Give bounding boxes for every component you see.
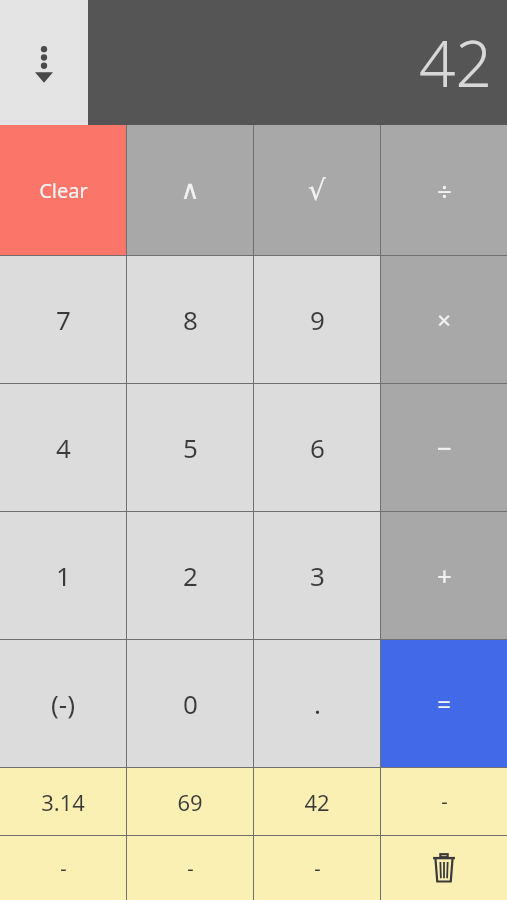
- button[interactable]: -: [381, 768, 507, 835]
- button[interactable]: Clear: [0, 125, 126, 255]
- staticText: 42: [419, 19, 493, 106]
- button[interactable]: More options: [0, 0, 88, 125]
- staticText: 1: [56, 558, 71, 593]
- staticText: -: [441, 788, 448, 815]
- staticText: Clear: [39, 177, 88, 204]
- staticText: ∧: [180, 175, 200, 205]
- button[interactable]: 2: [127, 512, 253, 639]
- button[interactable]: 5: [127, 384, 253, 511]
- staticText: (-): [51, 686, 75, 721]
- button[interactable]: Power: [127, 125, 253, 255]
- staticText: 8: [183, 302, 198, 337]
- staticText: −: [437, 430, 452, 465]
- staticText: 7: [56, 302, 71, 337]
- staticText: 69: [177, 787, 203, 817]
- staticText: +: [437, 558, 452, 593]
- button[interactable]: 1: [0, 512, 126, 639]
- button[interactable]: Multiply: [381, 256, 507, 383]
- button[interactable]: 8: [127, 256, 253, 383]
- button[interactable]: Clear memory: [381, 836, 507, 900]
- staticText: 2: [183, 558, 198, 593]
- button[interactable]: 69: [127, 768, 253, 835]
- staticText: 6: [310, 430, 325, 465]
- staticText: .: [314, 686, 321, 721]
- button[interactable]: 3.14: [0, 768, 126, 835]
- staticText: 0: [183, 686, 198, 721]
- button[interactable]: 9: [254, 256, 380, 383]
- staticText: 5: [183, 430, 198, 465]
- staticText: ÷: [437, 173, 452, 208]
- button[interactable]: 42: [254, 768, 380, 835]
- button[interactable]: .: [254, 640, 380, 767]
- button[interactable]: -: [0, 836, 126, 900]
- button[interactable]: 6: [254, 384, 380, 511]
- button[interactable]: 0: [127, 640, 253, 767]
- button[interactable]: -: [254, 836, 380, 900]
- staticText: √: [308, 174, 326, 207]
- button[interactable]: 3: [254, 512, 380, 639]
- button[interactable]: Equals: [381, 640, 507, 767]
- staticText: -: [314, 855, 321, 882]
- button[interactable]: 7: [0, 256, 126, 383]
- staticText: ×: [437, 303, 451, 336]
- button[interactable]: Divide: [381, 125, 507, 255]
- button[interactable]: Square root: [254, 125, 380, 255]
- staticText: 4: [56, 430, 71, 465]
- staticText: -: [60, 855, 67, 882]
- staticText: 3.14: [41, 787, 85, 817]
- staticText: 3: [310, 558, 325, 593]
- staticText: 9: [310, 302, 325, 337]
- button[interactable]: (-): [0, 640, 126, 767]
- staticText: -: [187, 855, 194, 882]
- button[interactable]: 4: [0, 384, 126, 511]
- staticText: 42: [304, 787, 330, 817]
- button[interactable]: Plus: [381, 512, 507, 639]
- button[interactable]: -: [127, 836, 253, 900]
- staticText: =: [437, 687, 451, 720]
